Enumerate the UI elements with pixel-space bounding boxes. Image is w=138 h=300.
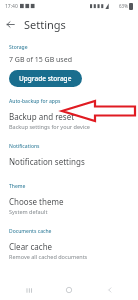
staticText: Backup settings for your device xyxy=(9,123,90,130)
button[interactable]: Back xyxy=(0,14,20,34)
staticText: Theme xyxy=(9,183,26,190)
button[interactable]: Upgrade storage xyxy=(9,70,82,87)
staticText: 63% xyxy=(119,3,128,9)
staticText: 7 GB of 15 GB used xyxy=(9,55,72,65)
staticText: Auto-backup for apps xyxy=(9,98,61,105)
button[interactable]: Recents xyxy=(17,280,41,300)
button[interactable]: Home xyxy=(57,280,81,300)
staticText: Notification settings xyxy=(9,156,85,167)
staticText: 17:40 xyxy=(5,3,18,10)
staticText: Choose theme xyxy=(9,196,64,207)
staticText: Clear cache xyxy=(9,241,53,252)
staticText: Settings xyxy=(24,17,66,32)
staticText: Upgrade storage xyxy=(19,74,72,83)
button[interactable]: Notification settings xyxy=(0,153,138,170)
button[interactable]: Back xyxy=(98,280,122,300)
staticText: Documents cache xyxy=(9,228,52,235)
staticText: System default xyxy=(9,208,48,215)
button[interactable]: Choose theme xyxy=(0,193,138,218)
staticText: Notifications xyxy=(9,143,40,150)
staticText: Backup and reset xyxy=(9,111,75,122)
staticText: Remove all cached documents xyxy=(9,253,88,260)
button[interactable]: Clear cache xyxy=(0,238,138,263)
button[interactable]: Backup and reset xyxy=(0,108,138,133)
staticText: Storage xyxy=(9,44,28,51)
